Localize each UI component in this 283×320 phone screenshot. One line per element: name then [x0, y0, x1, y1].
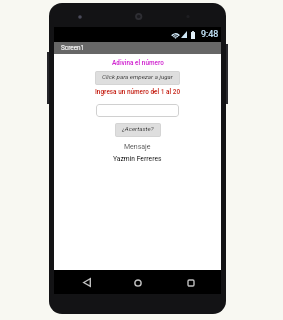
- staticText: Adivina el número: [112, 59, 164, 67]
- button[interactable]: Click para empezar a jugar: [95, 71, 180, 85]
- button[interactable]: Home: [130, 275, 145, 290]
- staticText: Mensaje: [124, 143, 151, 151]
- staticText: Yazmin Ferreres: [113, 155, 162, 163]
- button[interactable]: Número: [96, 104, 179, 117]
- staticText: Ingresa un número del 1 al 20: [95, 88, 181, 96]
- button[interactable]: ¿Acertaste?: [115, 123, 161, 137]
- staticText: Click para empezar a jugar: [102, 73, 173, 80]
- button[interactable]: Back: [79, 275, 94, 290]
- button[interactable]: Recent apps: [183, 275, 198, 290]
- staticText: 9:48: [201, 29, 219, 40]
- staticText: Screen1: [61, 44, 85, 52]
- staticText: ¿Acertaste?: [122, 125, 154, 132]
